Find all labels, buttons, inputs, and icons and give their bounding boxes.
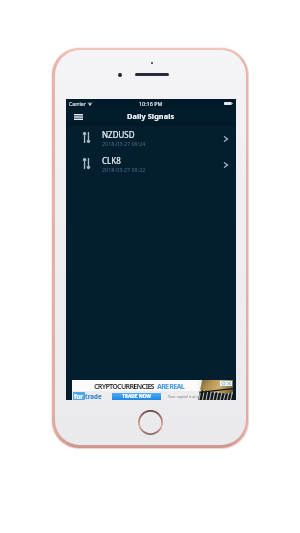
staticText: trade	[85, 392, 102, 400]
button[interactable]: CLK8	[66, 152, 236, 178]
staticText: NZDUSD	[102, 129, 135, 140]
staticText: 2018-03-27 09:24	[102, 140, 146, 147]
button[interactable]: Open navigation menu	[66, 108, 84, 126]
staticText: Your capital is at risk	[168, 394, 203, 399]
button[interactable]: Home	[138, 410, 163, 435]
button[interactable]: Advertisement	[72, 380, 233, 400]
staticText: TRADE NOW	[122, 393, 151, 400]
staticText: Daily Signals	[127, 111, 175, 121]
button[interactable]: TRADE NOW	[112, 393, 161, 400]
staticText: CRYPTOCURRENCIES	[94, 381, 154, 391]
staticText: ARE REAL	[157, 381, 184, 391]
staticText: 10:16 PM	[139, 100, 163, 107]
staticText: Carrier	[69, 100, 86, 107]
staticText: for	[74, 392, 84, 400]
staticText: 2018-03-27 09:22	[102, 166, 146, 173]
staticText: CLK8	[102, 155, 121, 166]
button[interactable]: NZDUSD	[66, 126, 236, 152]
